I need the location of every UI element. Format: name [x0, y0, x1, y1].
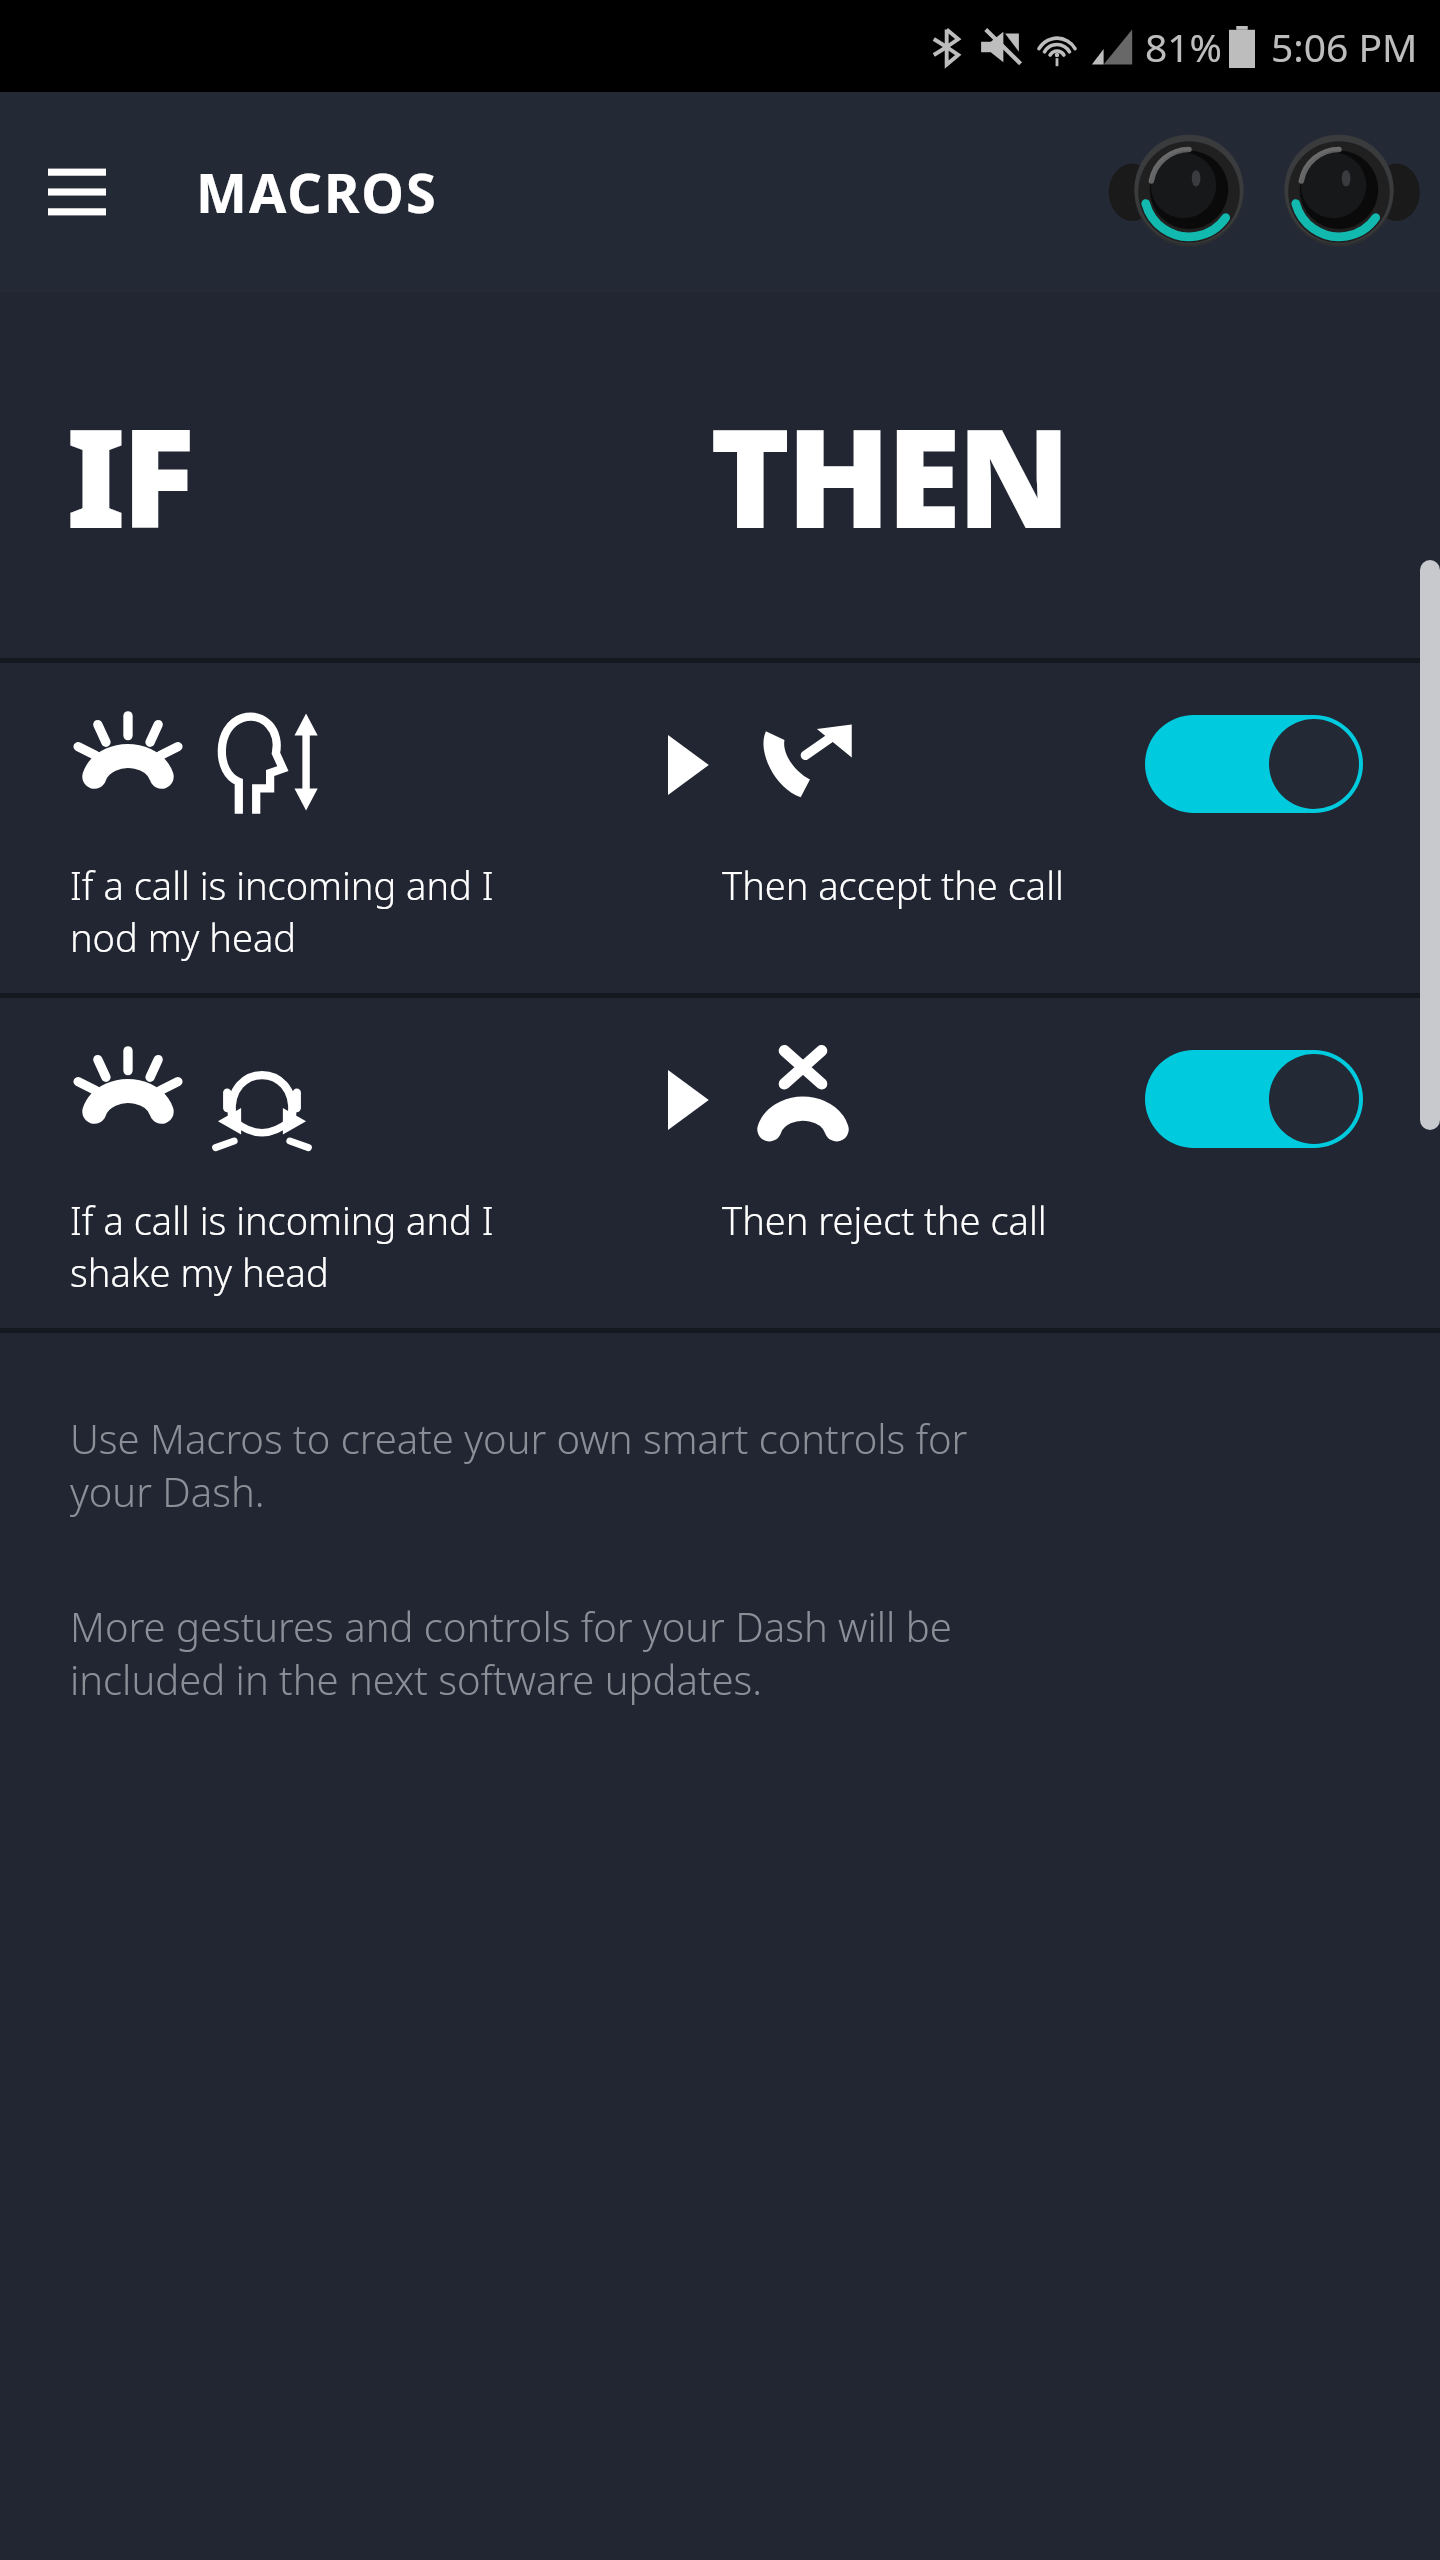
button[interactable]: Open navigation menu — [48, 161, 106, 223]
staticText: If a call is incoming and I — [70, 1194, 494, 1246]
staticText: Then accept the call — [722, 859, 1064, 911]
staticText: IF — [66, 383, 192, 568]
staticText: More gestures and controls for your Dash… — [70, 1599, 952, 1707]
staticText: 81% — [1145, 20, 1223, 73]
staticText: 5:06 PM — [1271, 20, 1418, 73]
button[interactable]: Toggle macro on or off — [0, 663, 1440, 993]
button[interactable]: Toggle macro on or off — [1145, 1050, 1363, 1148]
staticText: nod my head — [70, 911, 297, 963]
button[interactable]: Toggle macro on or off — [1145, 715, 1363, 813]
staticText: MACROS — [196, 155, 438, 229]
button[interactable]: Left earbud — [1114, 122, 1264, 262]
staticText: If a call is incoming and I — [70, 859, 494, 911]
button[interactable]: Toggle macro on or off — [0, 998, 1440, 1328]
staticText: Then reject the call — [722, 1194, 1047, 1246]
button[interactable]: Right earbud — [1264, 122, 1414, 262]
staticText: shake my head — [70, 1246, 329, 1298]
staticText: Use Macros to create your own smart cont… — [70, 1411, 968, 1519]
staticText: THEN — [710, 383, 1067, 568]
